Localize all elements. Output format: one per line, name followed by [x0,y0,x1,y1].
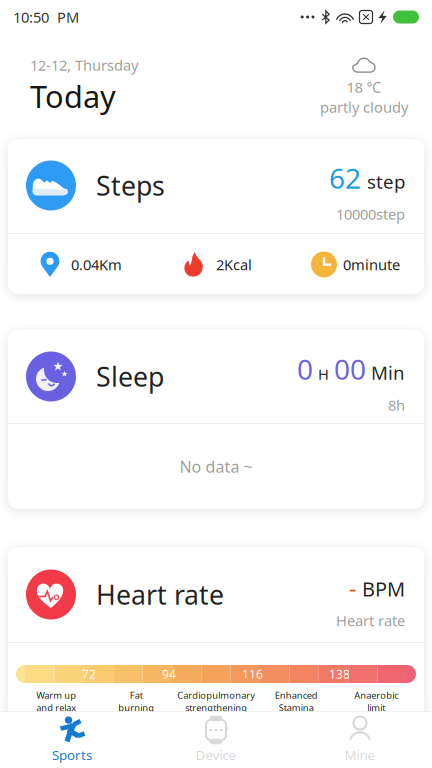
staticText: 62 [329,159,361,196]
staticText: step [367,169,405,194]
staticText: 2Kcal [216,255,252,274]
staticText: Min [371,360,405,385]
staticText: Anaerobic limit [354,689,398,714]
staticText: 00 [334,350,366,387]
staticText: 94 [162,666,176,682]
button[interactable]: Mine [288,712,432,768]
staticText: Steps [96,168,165,203]
staticText: 0minute [343,255,400,274]
button[interactable]: Sleep [8,330,424,509]
staticText: 72 [82,666,96,682]
staticText: H [318,364,329,384]
staticText: BPM [362,575,405,602]
staticText: Heart rate [96,577,224,612]
staticText: Today [30,76,116,116]
staticText: 116 [242,666,263,682]
staticText: - [349,573,356,603]
staticText: 0 [297,350,313,387]
staticText: Sports [52,746,92,764]
staticText: No data ~ [179,456,252,477]
staticText: Device [195,746,236,764]
staticText: Cardiopulmonary strengthening [177,689,255,714]
staticText: Warm up and relax [36,689,76,714]
staticText: 0.04Km [71,255,122,274]
staticText: 10:50 PM [13,7,79,27]
staticText: 12-12, Thursday [30,55,138,75]
staticText: Heart rate [336,611,405,630]
staticText: 18 ℃ [346,77,381,97]
staticText: Enhanced Stamina [274,689,317,714]
staticText: Fat burning [118,689,154,714]
button[interactable]: Device [144,712,288,768]
staticText: 138 [329,666,350,682]
staticText: Sleep [96,359,164,394]
button[interactable]: Steps [8,138,424,295]
button[interactable]: Sports [0,712,144,768]
staticText: partly cloudy [320,97,408,117]
staticText: Mine [344,746,375,764]
button[interactable]: Heart rate [8,547,424,722]
staticText: 8h [388,395,405,415]
staticText: 10000step [336,204,405,224]
